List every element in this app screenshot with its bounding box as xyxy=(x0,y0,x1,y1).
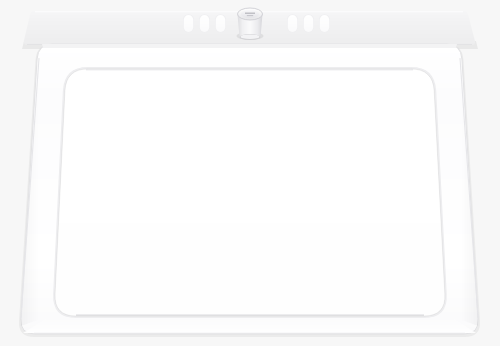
button[interactable]: Square surface mounted LED ceiling panel… xyxy=(0,0,500,346)
